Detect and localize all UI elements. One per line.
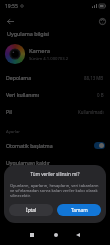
button[interactable]: İptal [9,204,53,216]
button[interactable]: Yardım [95,15,110,28]
button[interactable]: Veri kullanımı [0,86,110,103]
staticText: Veri kullanımı [6,91,40,98]
button[interactable]: Depolama [0,69,110,86]
button[interactable]: Uygulamayı kaldır [0,154,110,171]
staticText: Kamera [29,47,51,55]
button[interactable]: Pil [0,103,110,120]
staticText: Sürüm 4.1.000703.2 [29,56,69,62]
staticText: Uygulama bilgisi [7,30,49,37]
staticText: 19:55 [5,3,18,10]
staticText: Tüm veriler silinsin mi? [30,171,80,177]
button[interactable]: Son kullanılanlar [25,228,38,241]
staticText: Pil [6,108,12,115]
staticText: Otomatik başlatma [6,142,53,149]
button[interactable]: Otomatik başlatma [0,137,110,154]
staticText: İptal [26,207,37,214]
staticText: Depolama [6,74,32,81]
button[interactable]: Geri [4,15,17,28]
staticText: Tamam [71,207,88,214]
button[interactable]: Ana ekran [49,228,62,241]
button[interactable]: Geri [71,228,84,241]
staticText: Uygulamayı kaldır [6,159,50,166]
staticText: Kullanılmadı [78,109,104,115]
staticText: Oyunların, ayarların, hesapların, veri t… [10,183,100,198]
button[interactable]: Tamam [57,204,101,216]
staticText: 88,13 MB [84,75,104,81]
staticText: 0 B [97,92,104,98]
staticText: Ayarlar [6,129,21,135]
